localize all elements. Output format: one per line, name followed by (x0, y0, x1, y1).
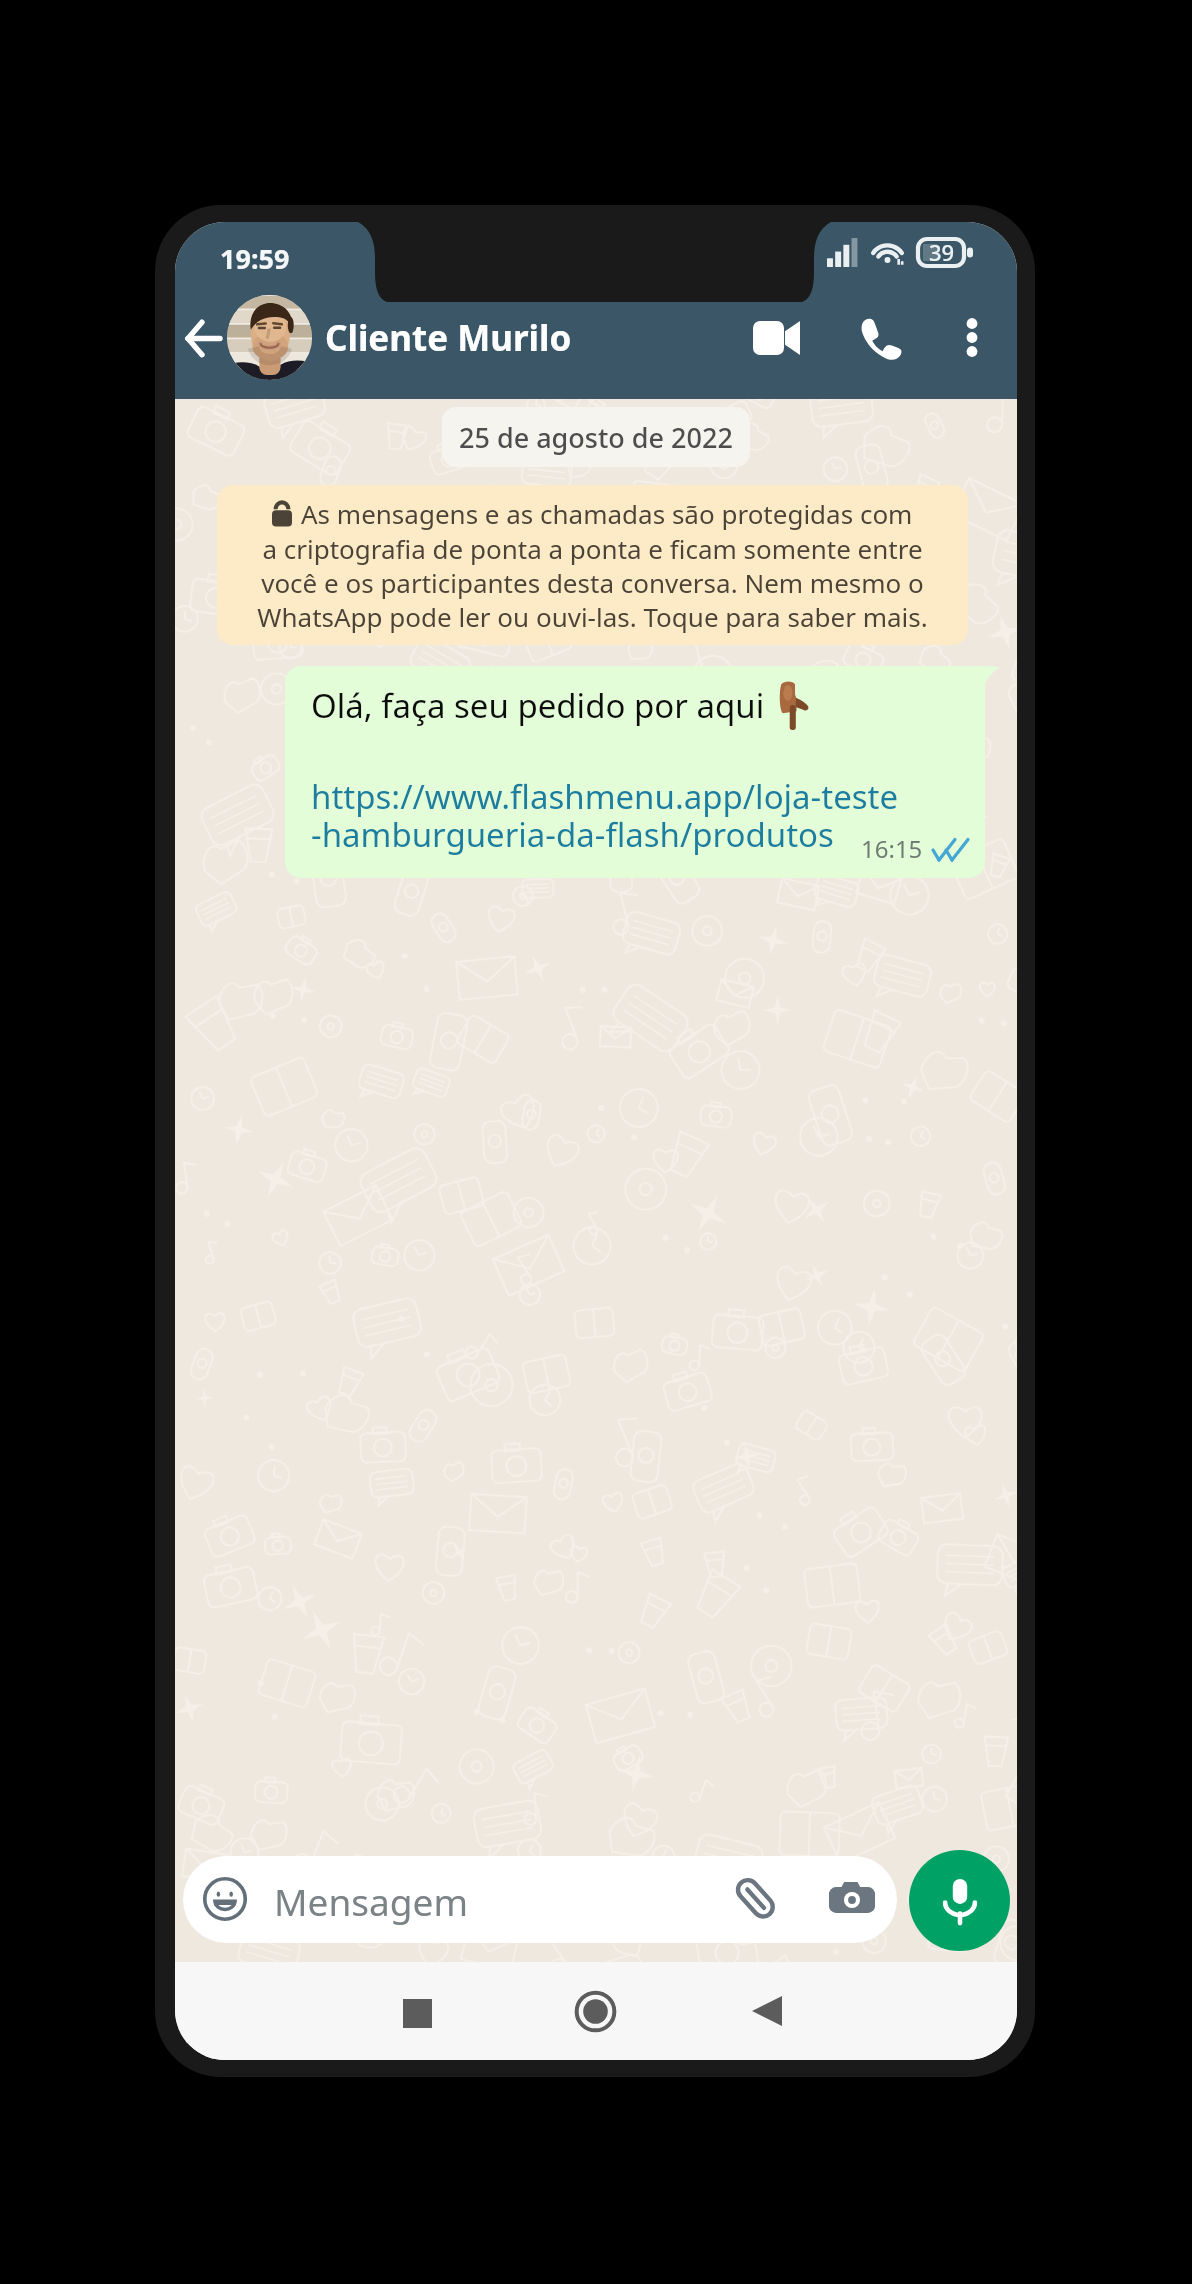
button[interactable]: Home (550, 1962, 630, 2060)
button[interactable]: Camera (816, 1864, 888, 1936)
button[interactable]: Emoji (189, 1863, 261, 1935)
button[interactable]: Call (845, 303, 915, 373)
button[interactable]: Emoji (183, 1856, 897, 1943)
staticText: Olá, faça seu pedido por aqui (311, 683, 773, 728)
staticText: Mensagem (274, 1876, 468, 1926)
button[interactable]: 25 de agosto de 2022 (442, 407, 750, 467)
staticText: a criptografia de ponta a ponta e ficam … (257, 531, 928, 634)
button[interactable]: Olá, faça seu pedido por aqui (285, 666, 985, 878)
button[interactable]: Record voice message (909, 1850, 1010, 1951)
button[interactable]: Back (727, 1962, 807, 2060)
staticText: As mensagens e as chamadas são protegida… (301, 496, 913, 531)
button[interactable]: As mensagens e as chamadas são protegida… (217, 485, 968, 645)
staticText: 16:15 (861, 832, 923, 865)
button[interactable]: Attach file (720, 1863, 792, 1935)
staticText: 19:59 (220, 240, 290, 277)
staticText: Cliente Murilo (325, 314, 572, 362)
button[interactable]: Back (175, 307, 234, 369)
staticText: 25 de agosto de 2022 (459, 419, 733, 456)
button[interactable]: More options (939, 305, 1005, 371)
button[interactable]: Video call (741, 303, 811, 373)
staticText: https://www.flashmenu.app/loja-teste -ha… (311, 774, 899, 856)
staticText: 39 (929, 237, 955, 267)
button[interactable]: Recent apps (375, 1962, 455, 2060)
